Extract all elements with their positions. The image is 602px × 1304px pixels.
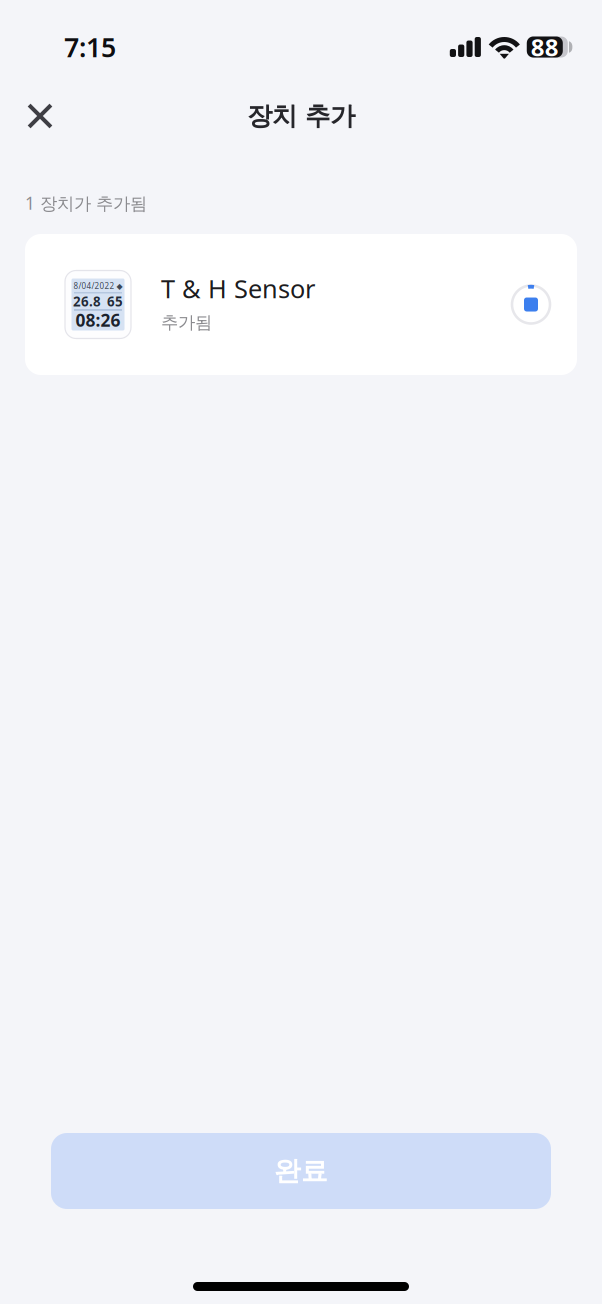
button[interactable]: 완료 — [51, 1133, 551, 1209]
staticText: T & H Sensor — [161, 272, 315, 305]
staticText: 장치 추가 — [247, 100, 355, 131]
staticText: 88 — [531, 31, 559, 63]
staticText: 8/04/2022 ◆ — [73, 281, 122, 291]
staticText: 완료 — [274, 1155, 328, 1187]
staticText: 7:15 — [64, 29, 116, 65]
button[interactable]: 8/04/2022 ◆ — [25, 234, 577, 375]
staticText: 26.8 65 — [73, 292, 123, 310]
button[interactable]: 닫기 — [13, 89, 67, 143]
staticText: 1 장치가 추가됨 — [25, 191, 147, 214]
staticText: 08:26 — [75, 309, 120, 332]
staticText: 추가됨 — [161, 312, 212, 333]
